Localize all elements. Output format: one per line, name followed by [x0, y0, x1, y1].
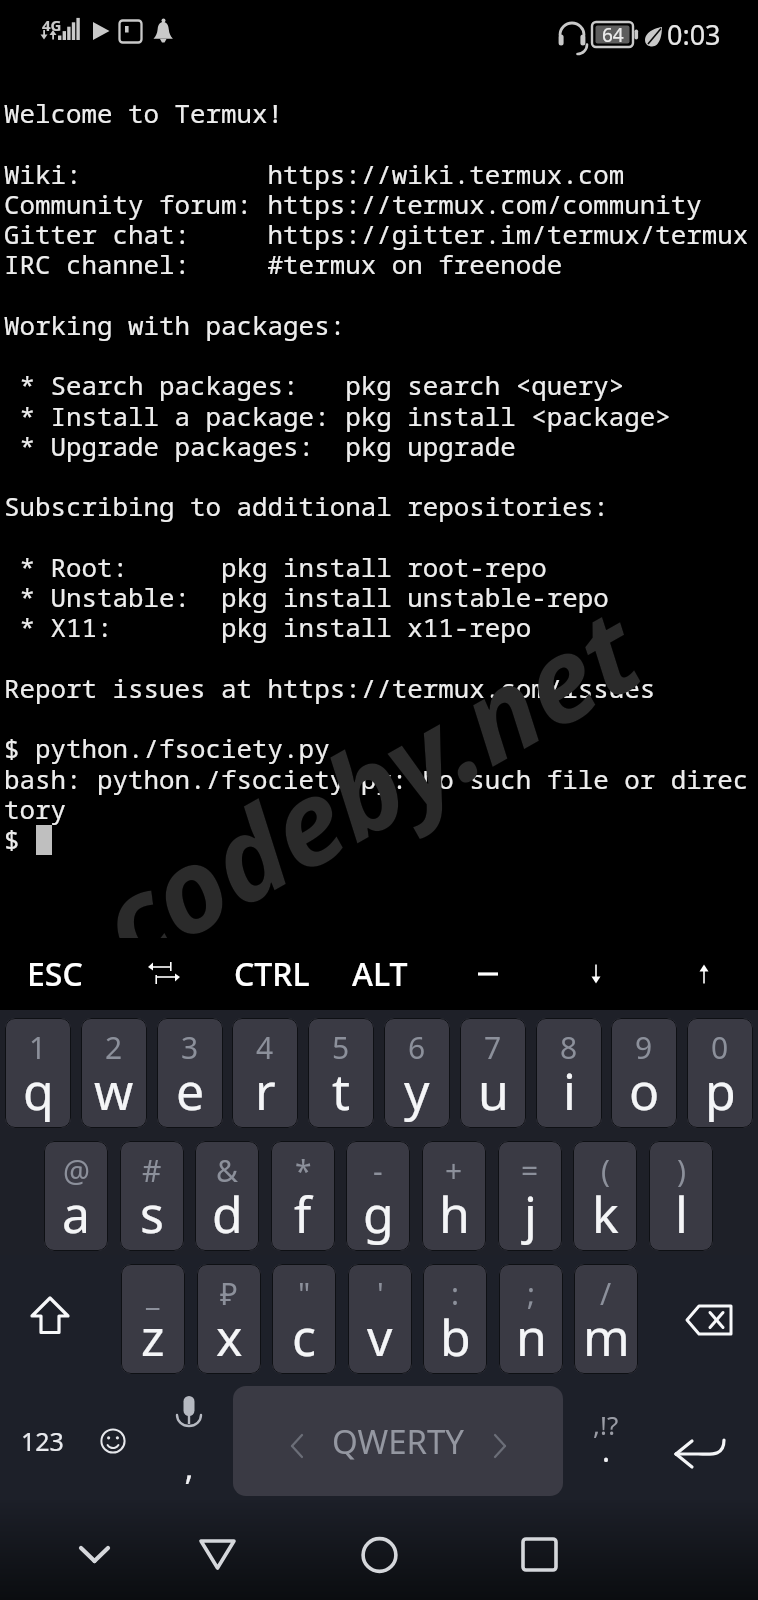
button[interactable]: ₽	[197, 1264, 261, 1374]
staticText: +	[445, 1150, 463, 1191]
button[interactable]: #	[120, 1141, 184, 1251]
staticText: k	[592, 1180, 619, 1248]
button[interactable]: QWERTY	[233, 1386, 563, 1496]
button[interactable]: &	[195, 1141, 259, 1251]
staticText: x	[216, 1303, 243, 1371]
staticText: $ python./fsociety.py	[4, 734, 330, 764]
button[interactable]: Recents	[568, 1500, 758, 1600]
staticText: CTRL	[234, 952, 310, 996]
staticText: ESC	[27, 952, 83, 996]
staticText: 0	[711, 1027, 729, 1068]
button[interactable]: Down	[542, 938, 650, 1010]
staticText: 0:03	[667, 16, 721, 53]
staticText: #	[142, 1150, 162, 1191]
button[interactable]: Backspace	[660, 1264, 758, 1374]
staticText: 9	[635, 1027, 653, 1068]
staticText: .	[602, 1430, 611, 1471]
button[interactable]: Punctuation	[570, 1386, 642, 1496]
button[interactable]: Minus	[434, 938, 542, 1010]
staticText: (	[601, 1150, 610, 1191]
button[interactable]: "	[272, 1264, 336, 1374]
button[interactable]: _	[121, 1264, 185, 1374]
staticText: 3	[181, 1027, 199, 1068]
staticText: p	[705, 1057, 736, 1125]
button[interactable]: Hide keyboard	[0, 1500, 189, 1600]
staticText: Gitter chat: https://gitter.im/termux/te…	[4, 220, 749, 250]
staticText: :	[451, 1273, 460, 1314]
button[interactable]: /	[574, 1264, 638, 1374]
staticText: 6	[408, 1027, 426, 1068]
staticText: /	[600, 1273, 612, 1314]
staticText: ;	[527, 1273, 536, 1314]
button[interactable]: 0	[687, 1018, 753, 1128]
button[interactable]: 8	[536, 1018, 602, 1128]
button[interactable]: Voice input	[158, 1386, 220, 1496]
staticText: QWERTY	[332, 1419, 465, 1464]
staticText: Working with packages:	[4, 311, 346, 341]
button[interactable]: Emoji	[82, 1386, 144, 1496]
staticText: @	[63, 1150, 90, 1191]
button[interactable]: CTRL	[218, 938, 326, 1010]
button[interactable]: -	[346, 1141, 410, 1251]
button[interactable]: @	[44, 1141, 108, 1251]
staticText: bash: python./fsociety.py: No such file …	[4, 765, 749, 795]
staticText: u	[478, 1057, 509, 1125]
staticText: j	[524, 1180, 537, 1248]
staticText: n	[516, 1303, 547, 1371]
staticText: o	[629, 1057, 660, 1125]
staticText: tory	[4, 795, 67, 825]
button[interactable]: (	[573, 1141, 637, 1251]
button[interactable]: ESC	[0, 938, 109, 1010]
button[interactable]: 7	[460, 1018, 526, 1128]
staticText: a	[62, 1180, 91, 1248]
staticText: * Unstable: pkg install unstable-repo	[4, 583, 609, 613]
button[interactable]: 123	[0, 1386, 85, 1496]
button[interactable]: 9	[611, 1018, 677, 1128]
staticText: ,!?	[593, 1407, 619, 1442]
button[interactable]: 1	[5, 1018, 71, 1128]
staticText: codeby.net	[70, 570, 667, 1001]
staticText: ,	[158, 1444, 220, 1490]
staticText: f	[294, 1180, 312, 1248]
staticText: i	[563, 1057, 576, 1125]
staticText: 2	[105, 1027, 123, 1068]
staticText: Report issues at https://termux.com/issu…	[4, 674, 656, 704]
staticText: 4	[256, 1027, 274, 1068]
staticText: 7	[484, 1027, 502, 1068]
button[interactable]: ALT	[326, 938, 434, 1010]
button[interactable]: 4	[232, 1018, 298, 1128]
staticText: ₽	[220, 1273, 238, 1314]
button[interactable]: 5	[308, 1018, 374, 1128]
button[interactable]: +	[422, 1141, 486, 1251]
button[interactable]: Enter	[652, 1386, 752, 1496]
staticText: Wiki: https://wiki.termux.com	[4, 160, 625, 190]
button[interactable]: Back	[189, 1500, 378, 1600]
button[interactable]: 6	[384, 1018, 450, 1128]
button[interactable]: 3	[157, 1018, 223, 1128]
button[interactable]: '	[348, 1264, 412, 1374]
staticText: q	[23, 1057, 54, 1125]
staticText: "	[298, 1273, 311, 1314]
staticText: *	[295, 1150, 312, 1191]
staticText: l	[675, 1180, 688, 1248]
button[interactable]: 2	[81, 1018, 147, 1128]
staticText: 4G	[42, 15, 62, 35]
button[interactable]: )	[649, 1141, 713, 1251]
button[interactable]: Home	[378, 1500, 568, 1600]
button[interactable]: ;	[499, 1264, 563, 1374]
button[interactable]: *	[271, 1141, 335, 1251]
staticText: Welcome to Termux!	[4, 99, 284, 129]
staticText: &	[216, 1150, 238, 1191]
staticText: * X11: pkg install x11-repo	[4, 613, 532, 643]
staticText: -	[373, 1150, 383, 1191]
button[interactable]: =	[498, 1141, 562, 1251]
staticText: s	[140, 1180, 164, 1248]
button[interactable]: Up	[650, 938, 758, 1010]
staticText: c	[292, 1303, 316, 1371]
button[interactable]: :	[423, 1264, 487, 1374]
staticText: y	[404, 1057, 430, 1125]
staticText: * Install a package: pkg install <packag…	[4, 402, 671, 432]
button[interactable]: Shift	[5, 1264, 95, 1374]
button[interactable]: Tab	[109, 938, 218, 1010]
staticText: d	[212, 1180, 243, 1248]
